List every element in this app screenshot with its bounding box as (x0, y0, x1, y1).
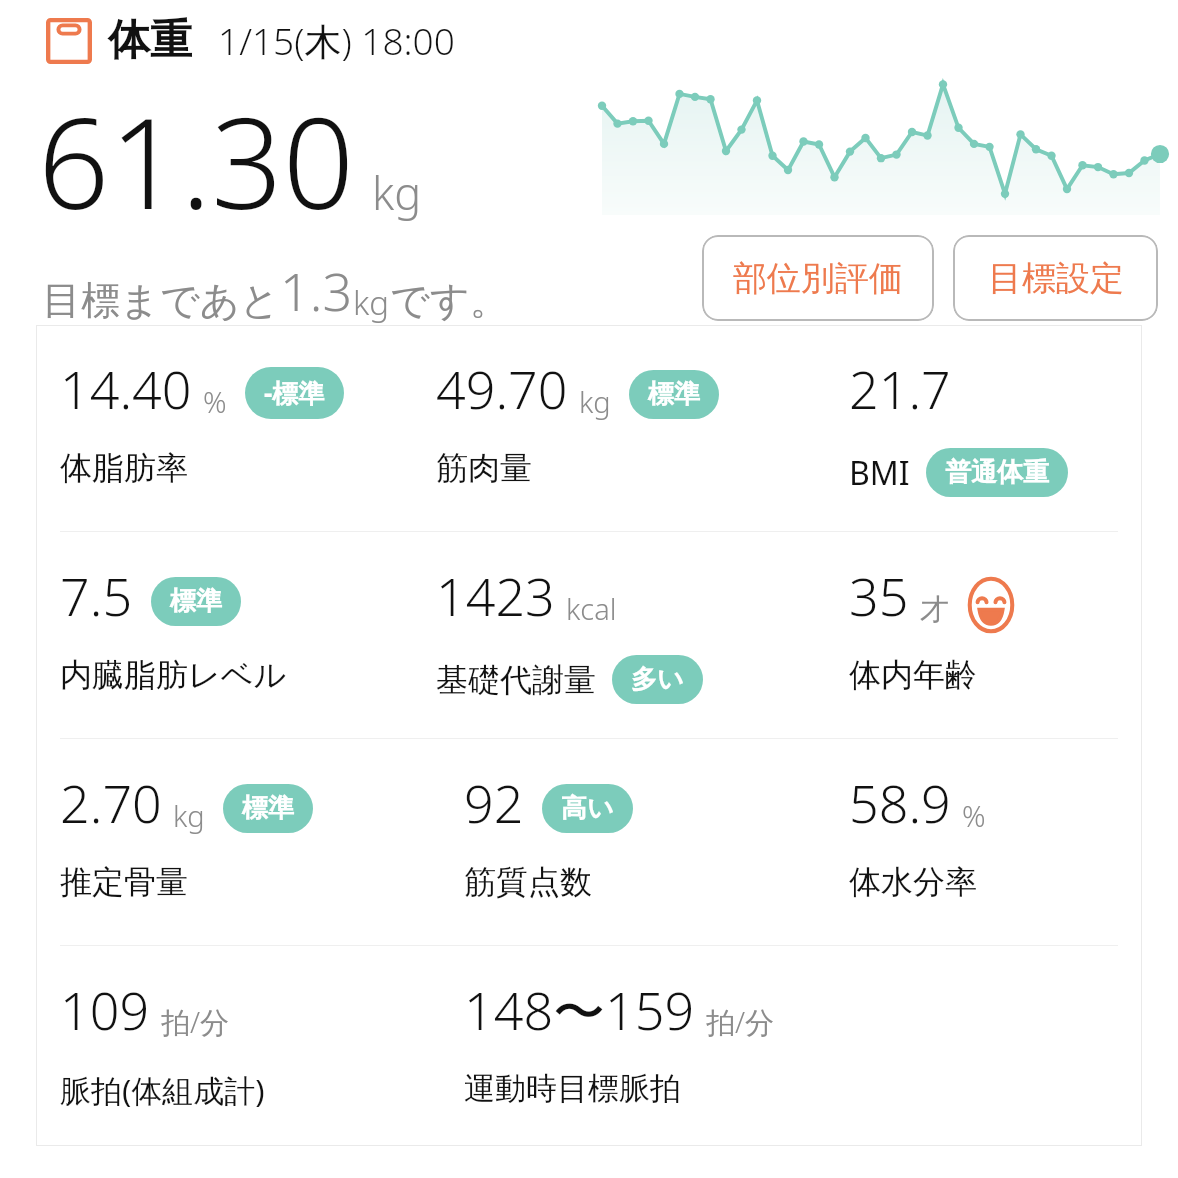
staticText: 基礎代謝量 (436, 660, 596, 700)
staticText: % (962, 796, 986, 835)
staticText: 体水分率 (849, 862, 977, 902)
staticText: 拍/分 (161, 1002, 230, 1042)
staticText: 標準 (648, 378, 700, 411)
button[interactable]: 部位別評価 (702, 235, 934, 321)
button[interactable]: 目標設定 (953, 235, 1158, 321)
staticText: 才 (920, 591, 949, 628)
staticText: 運動時目標脈拍 (464, 1069, 681, 1108)
button[interactable]: 92 (412, 739, 825, 945)
staticText: 35 (849, 560, 909, 631)
staticText: 脈拍(体組成計) (60, 1069, 265, 1111)
button[interactable]: 148〜159 (412, 946, 1142, 1146)
staticText: 21.7 (849, 353, 951, 424)
staticText: % (203, 382, 227, 421)
staticText: -標準 (264, 375, 325, 411)
button[interactable]: 109 (36, 946, 412, 1146)
staticText: 92 (464, 767, 524, 838)
staticText: 1/15(木) 18:00 (218, 15, 455, 66)
staticText: 標準 (170, 585, 222, 618)
staticText: 筋質点数 (464, 862, 592, 902)
staticText: 2.70 (60, 767, 162, 838)
button[interactable]: Weight (46, 18, 92, 64)
button[interactable]: 21.7 (825, 325, 1142, 531)
staticText: 目標まであと (42, 276, 280, 325)
staticText: 49.70 (436, 353, 568, 424)
staticText: 14.40 (60, 353, 192, 424)
staticText: 推定骨量 (60, 862, 188, 902)
staticText: 7.5 (60, 560, 133, 631)
staticText: 標準 (242, 792, 294, 825)
button[interactable]: 49.70 (412, 325, 825, 531)
staticText: 内臓脂肪レベル (60, 655, 287, 695)
staticText: 部位別評価 (733, 257, 903, 300)
staticText: kg (173, 796, 205, 835)
staticText: 普通体重 (945, 456, 1049, 489)
button[interactable]: 7.5 (36, 532, 412, 738)
button[interactable]: 35 (825, 532, 1142, 738)
other: Body age mood (963, 577, 1019, 633)
staticText: 筋肉量 (436, 448, 532, 488)
staticText: 61.30 (38, 75, 354, 245)
staticText: 148〜159 (464, 974, 695, 1045)
staticText: 58.9 (849, 767, 951, 838)
staticText: 体内年齢 (849, 655, 977, 695)
button[interactable]: 14.40 (36, 325, 412, 531)
staticText: 体重 (108, 14, 192, 67)
button[interactable]: 2.70 (36, 739, 412, 945)
button[interactable]: 58.9 (825, 739, 1142, 945)
staticText: 109 (60, 974, 150, 1045)
staticText: 拍/分 (706, 1002, 775, 1042)
staticText: 目標設定 (988, 257, 1124, 300)
staticText: 高い (561, 792, 614, 825)
staticText: です。 (390, 276, 509, 325)
staticText: 1.3 (280, 255, 353, 325)
staticText: kcal (566, 589, 617, 628)
staticText: 多い (631, 663, 684, 696)
staticText: kg (372, 162, 422, 223)
staticText: 1423 (436, 560, 555, 631)
staticText: kg (579, 382, 611, 421)
staticText: BMI (849, 451, 910, 495)
staticText: kg (353, 280, 390, 325)
staticText: 体脂肪率 (60, 448, 188, 488)
button[interactable]: 1423 (412, 532, 825, 738)
